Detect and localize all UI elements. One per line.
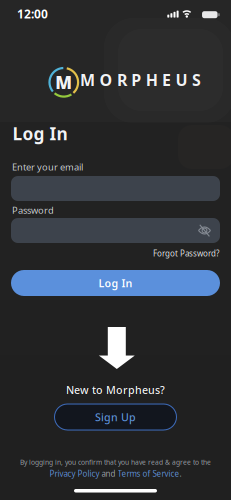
staticText: U [175, 69, 187, 90]
staticText: M [55, 71, 72, 94]
staticText: Log In [98, 276, 132, 290]
button[interactable]: Sign Up [54, 404, 176, 430]
staticText: M [80, 69, 95, 90]
staticText: Log In [12, 122, 67, 145]
staticText: S [192, 69, 201, 90]
staticText: 12:00 [17, 6, 48, 22]
staticText: O [99, 69, 112, 90]
staticText: Privacy Policy [49, 468, 99, 479]
button[interactable]: Show password [198, 224, 220, 237]
button[interactable]: Password [11, 218, 220, 243]
staticText: Forgot Password? [153, 248, 219, 259]
staticText: and [99, 468, 117, 479]
staticText: Terms of Service [117, 468, 179, 479]
button[interactable]: Privacy Policy [49, 468, 181, 479]
staticText: Enter your email [12, 161, 83, 173]
staticText: By logging in, you confirm that you have… [20, 458, 211, 467]
staticText: H [146, 69, 158, 90]
staticText: P [131, 69, 141, 90]
staticText: New to Morpheus? [66, 383, 165, 397]
button[interactable]: Forgot Password? [153, 248, 219, 259]
staticText: E [162, 69, 171, 90]
staticText: Password [12, 204, 54, 216]
staticText: Sign Up [95, 410, 136, 424]
button[interactable]: Email [11, 176, 220, 201]
button[interactable]: Log In [11, 270, 220, 296]
staticText: . [179, 468, 181, 479]
staticText: R [117, 69, 127, 90]
